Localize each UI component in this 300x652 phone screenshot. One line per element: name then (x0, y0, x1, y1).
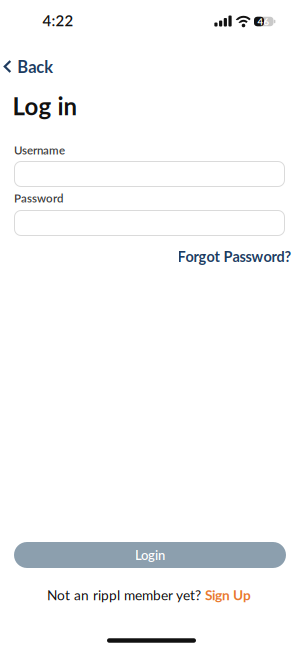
staticText: Username (14, 143, 65, 157)
button[interactable]: Login (14, 542, 286, 568)
staticText: 46 (257, 16, 269, 27)
button[interactable]: Sign Up (205, 587, 251, 603)
staticText: Login (135, 547, 165, 563)
staticText: Log in (12, 92, 77, 120)
staticText: Not an rippl member yet? (47, 587, 201, 603)
staticText: 4:22 (42, 11, 73, 29)
staticText: Password (14, 191, 63, 205)
button[interactable]: Forgot Password? (177, 248, 291, 265)
staticText: Back (17, 57, 53, 76)
button[interactable]: Back (4, 57, 53, 76)
staticText: Forgot Password? (177, 248, 291, 265)
staticText: Sign Up (205, 587, 251, 603)
